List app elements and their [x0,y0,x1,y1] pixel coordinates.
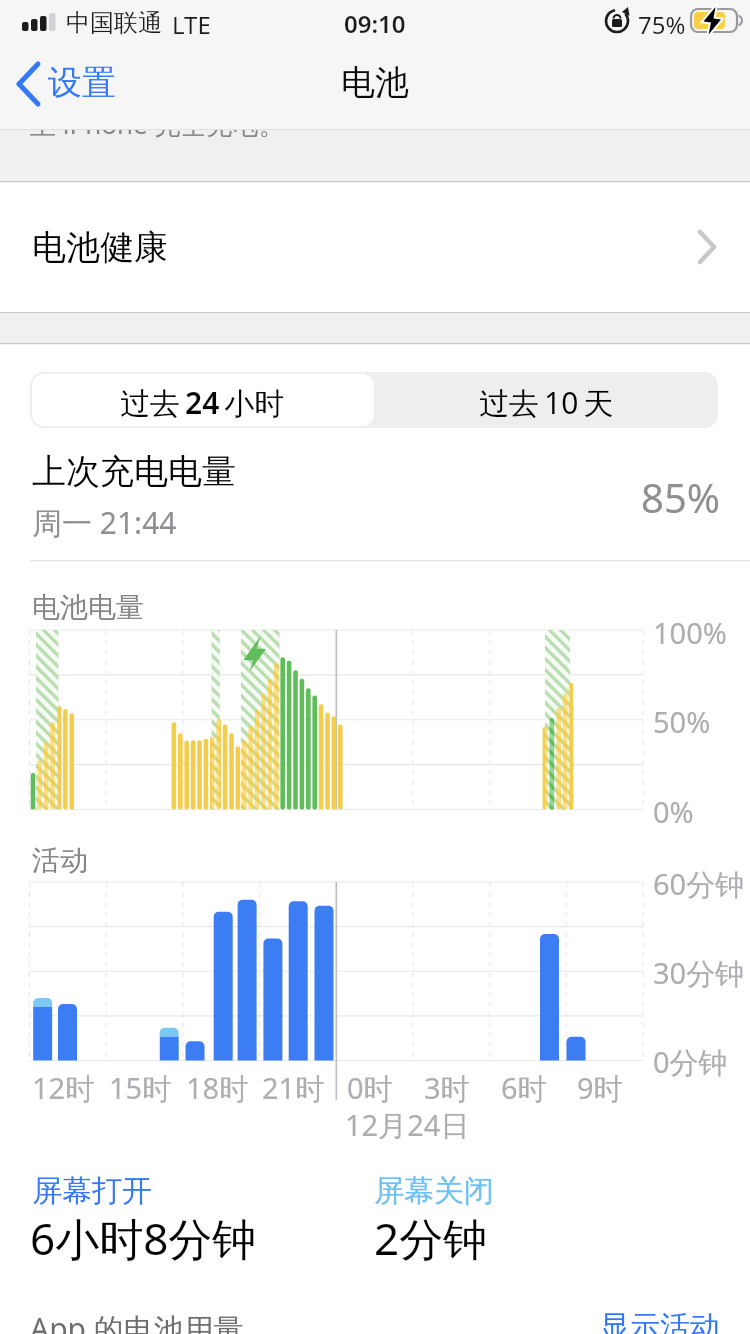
staticText: 0% [653,792,694,831]
staticText: 至 iPhone 完全充电。 [30,106,285,142]
staticText: 上次充电电量 [32,450,236,493]
staticText: 12时 [32,1068,95,1108]
staticText: 显示活动 [600,1308,720,1334]
staticText: 30分钟 [653,953,745,993]
staticText: 85% [641,470,720,524]
staticText: 中国联通 [66,8,162,38]
staticText: 0分钟 [653,1042,728,1082]
staticText: 15时 [109,1068,172,1108]
staticText: 设置 [48,61,116,104]
staticText: 6时 [501,1068,547,1108]
staticText: 0时 [347,1068,393,1108]
staticText: 周一 21:44 [32,502,177,543]
staticText: 活动 [32,843,88,878]
staticText: 18时 [186,1068,249,1108]
staticText: 屏幕打开 [32,1172,152,1210]
staticText: 12月24日 [345,1105,470,1145]
staticText: 过去 10 天 [479,382,614,423]
staticText: LTE [172,8,211,41]
staticText: 过去 24 小时 [120,382,285,423]
staticText: 电池 [341,61,409,104]
staticText: 电池健康 [32,226,168,269]
button[interactable] [0,182,750,312]
staticText: App 的电池用量 [30,1308,244,1334]
button[interactable] [32,374,374,426]
button[interactable] [374,372,718,428]
staticText: 电池电量 [32,590,144,625]
staticText: 09:10 [344,7,406,40]
staticText: 9时 [577,1068,623,1108]
button[interactable] [590,1295,750,1334]
staticText: 21时 [262,1068,325,1108]
staticText: 50% [653,702,711,741]
button[interactable] [6,50,146,120]
staticText: 2分钟 [374,1208,488,1268]
staticText: 6小时8分钟 [30,1208,257,1268]
staticText: 100% [653,613,727,652]
staticText: 3时 [424,1068,470,1108]
staticText: 60分钟 [653,864,745,904]
staticText: 75% [638,8,686,41]
staticText: 屏幕关闭 [374,1172,494,1210]
